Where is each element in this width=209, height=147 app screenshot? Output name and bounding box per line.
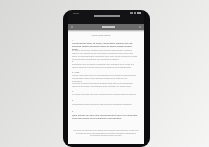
staticText: CONSUMER TERMS bbox=[91, 34, 111, 37]
staticText: 6. bbox=[72, 110, 74, 113]
staticText: Voluptatem sequi nesciunt neque porro qu… bbox=[72, 103, 133, 106]
staticText: Vel illum qui dolorem eum fugiat quo vol… bbox=[72, 129, 140, 137]
staticText: Quis autem vel eum iure reprehenderit qu… bbox=[72, 114, 138, 120]
staticText: 1. bbox=[72, 39, 74, 42]
staticText: 5. bbox=[72, 99, 74, 102]
staticText: Lorem ipsum dolor sit amet, consectetur … bbox=[72, 42, 138, 51]
staticText: Ut enim ad minim veniam quis nostrud exe… bbox=[72, 49, 138, 61]
button[interactable] bbox=[68, 24, 144, 30]
staticText: 2. bbox=[72, 60, 74, 63]
button[interactable]: Back bbox=[69, 25, 74, 30]
staticText: Veritatis et quasi architecto beatae vit… bbox=[72, 82, 138, 88]
staticText: 3. Unde bbox=[72, 71, 80, 74]
staticText: Omnis iste natus error sit voluptatem ac… bbox=[72, 74, 138, 83]
staticText: Aut odit aut fugit sed quia consequuntur… bbox=[72, 93, 137, 96]
staticText: 4. bbox=[72, 90, 74, 93]
staticText: Excepteur sint occaecat cupidatat non pr… bbox=[72, 63, 138, 69]
button[interactable]: More options bbox=[138, 25, 143, 30]
